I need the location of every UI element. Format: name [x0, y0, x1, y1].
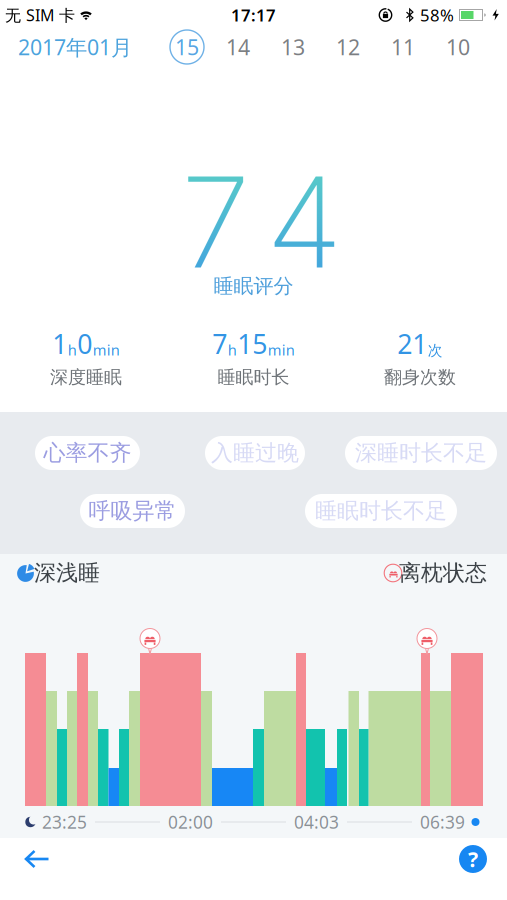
- button[interactable]: 14: [226, 32, 250, 62]
- button[interactable]: 10: [446, 32, 470, 62]
- staticText: 23:25: [42, 810, 87, 834]
- staticText: 06:39: [420, 810, 465, 834]
- staticText: 1: [52, 325, 67, 362]
- staticText: 呼吸异常: [88, 497, 176, 525]
- staticText: 睡眠评分: [213, 273, 293, 299]
- staticText: min: [93, 340, 120, 360]
- button[interactable]: 睡眠时长不足: [305, 494, 457, 528]
- staticText: 心率不齐: [43, 439, 131, 467]
- staticText: 12: [336, 32, 360, 62]
- staticText: 深度睡眠: [50, 366, 122, 388]
- button[interactable]: Help: [459, 845, 487, 873]
- staticText: 0: [77, 325, 92, 362]
- button[interactable]: Back: [15, 841, 59, 877]
- staticText: 15: [175, 32, 199, 62]
- staticText: 13: [281, 32, 305, 62]
- staticText: 次: [428, 341, 443, 360]
- staticText: h: [228, 340, 237, 360]
- staticText: 离枕状态: [399, 559, 487, 587]
- staticText: h: [68, 340, 77, 360]
- button[interactable]: 12: [336, 32, 360, 62]
- button[interactable]: 13: [281, 32, 305, 62]
- staticText: 7: [212, 325, 227, 362]
- staticText: 21: [397, 325, 427, 362]
- staticText: 14: [226, 32, 250, 62]
- staticText: 58%: [420, 4, 454, 26]
- staticText: 睡眠时长不足: [315, 497, 447, 525]
- staticText: 睡眠时长: [217, 366, 289, 388]
- staticText: 入睡过晚: [211, 439, 299, 467]
- staticText: 17:17: [231, 4, 276, 26]
- button[interactable]: 入睡过晚: [205, 436, 305, 470]
- staticText: 11: [391, 32, 415, 62]
- button[interactable]: 深睡时长不足: [345, 436, 497, 470]
- staticText: 04:03: [294, 810, 339, 834]
- staticText: 02:00: [168, 810, 213, 834]
- button[interactable]: 心率不齐: [35, 436, 140, 470]
- button[interactable]: 呼吸异常: [80, 494, 185, 528]
- staticText: 翻身次数: [384, 366, 456, 388]
- staticText: 2017年01月: [18, 32, 132, 62]
- button[interactable]: 2017年01月: [18, 32, 132, 62]
- button[interactable]: 11: [391, 32, 415, 62]
- staticText: 深睡时长不足: [355, 439, 487, 467]
- staticText: 15: [237, 325, 267, 362]
- staticText: ?: [468, 844, 478, 874]
- button[interactable]: 15: [169, 29, 205, 65]
- staticText: 深浅睡: [34, 559, 100, 587]
- staticText: min: [268, 340, 295, 360]
- staticText: 无 SIM 卡: [5, 4, 75, 26]
- staticText: 10: [446, 32, 470, 62]
